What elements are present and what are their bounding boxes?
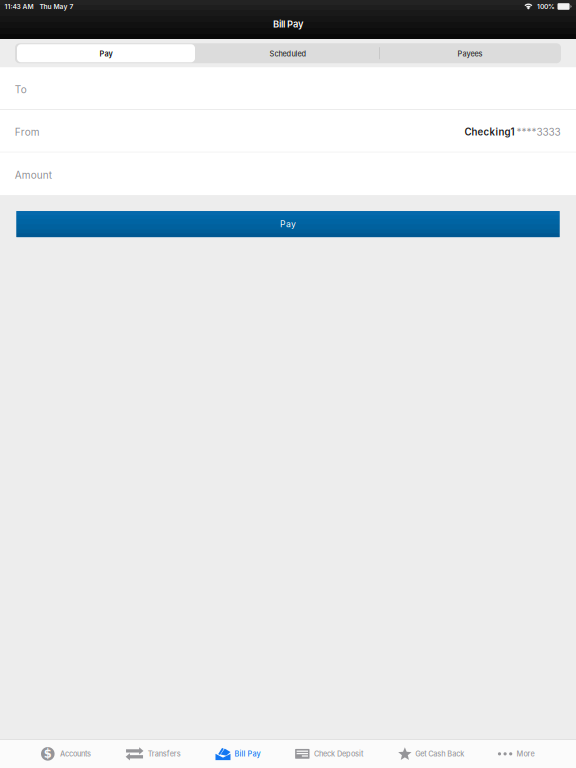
- staticText: ****3333: [516, 126, 560, 138]
- staticText: Thu May 7: [40, 2, 74, 11]
- button[interactable]: Pay: [16, 211, 559, 237]
- staticText: Check Deposit: [314, 749, 363, 758]
- staticText: Get Cash Back: [415, 749, 464, 758]
- button[interactable]: Check Deposit: [295, 739, 363, 768]
- button[interactable]: Get Cash Back: [398, 739, 464, 768]
- staticText: More: [516, 749, 534, 758]
- staticText: Checking1: [464, 126, 514, 138]
- button[interactable]: Payees: [379, 43, 561, 63]
- staticText: Accounts: [60, 749, 91, 758]
- staticText: Amount: [15, 169, 52, 181]
- button[interactable]: Bill Pay: [215, 739, 260, 768]
- staticText: 100%: [537, 2, 555, 11]
- staticText: 11:43 AM: [5, 2, 34, 11]
- staticText: From: [15, 126, 40, 138]
- staticText: Pay: [99, 49, 112, 58]
- button[interactable]: Transfers: [126, 739, 181, 768]
- button[interactable]: Pay: [15, 43, 197, 63]
- button[interactable]: $: [41, 739, 91, 768]
- staticText: Bill Pay: [273, 18, 303, 30]
- button[interactable]: Amount: [0, 152, 576, 195]
- button[interactable]: More: [499, 739, 534, 768]
- staticText: To: [15, 84, 27, 96]
- staticText: Transfers: [148, 749, 181, 758]
- button[interactable]: Scheduled: [197, 43, 379, 63]
- staticText: $: [44, 747, 52, 760]
- staticText: Scheduled: [269, 49, 306, 58]
- button[interactable]: From: [0, 110, 576, 152]
- staticText: Bill Pay: [234, 749, 260, 758]
- staticText: Payees: [457, 49, 482, 58]
- staticText: Pay: [280, 219, 296, 229]
